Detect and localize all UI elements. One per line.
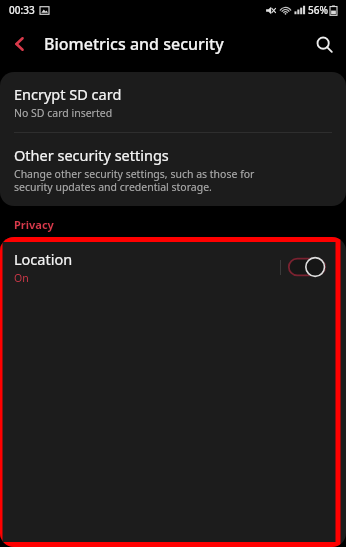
staticText: Encrypt SD card (14, 84, 122, 104)
staticText: Biometrics and security (44, 33, 302, 55)
button[interactable]: Back (0, 24, 40, 64)
staticText: On (14, 271, 29, 285)
staticText: 56% (308, 3, 328, 17)
button[interactable]: Location toggle, on (288, 256, 326, 278)
staticText: Change other security settings, such as … (14, 167, 255, 194)
staticText: Location (14, 249, 73, 269)
staticText: 00:33 (9, 3, 35, 17)
button[interactable]: Search (302, 22, 346, 66)
staticText: Other security settings (14, 145, 169, 165)
staticText: Privacy (14, 217, 54, 232)
staticText: No SD card inserted (14, 106, 113, 120)
button[interactable]: Location (0, 237, 338, 297)
button[interactable]: Encrypt SD card (0, 72, 346, 132)
button[interactable]: Other security settings (0, 133, 346, 206)
